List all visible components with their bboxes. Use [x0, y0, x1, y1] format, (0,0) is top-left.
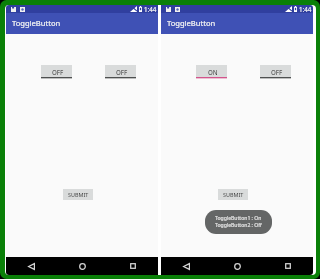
staticText: ToggleButton1 : On — [215, 215, 262, 222]
button[interactable]: Back — [24, 257, 39, 275]
button[interactable]: Home — [230, 257, 245, 275]
staticText: SUBMIT — [223, 191, 244, 198]
staticText: OFF — [52, 68, 64, 76]
button[interactable]: SUBMIT — [63, 189, 93, 200]
button[interactable]: OFF — [105, 65, 136, 79]
button[interactable]: ON — [196, 65, 227, 79]
staticText: SUBMIT — [68, 191, 89, 198]
staticText: ToggleButton — [12, 18, 61, 28]
staticText: 1:44 — [144, 5, 157, 13]
button[interactable]: Back — [179, 257, 194, 275]
staticText: ToggleButton — [167, 18, 216, 28]
staticText: ToggleButton2 : Off — [215, 222, 262, 229]
staticText: 1:44 — [299, 5, 312, 13]
button[interactable]: OFF — [41, 65, 72, 79]
button[interactable]: OFF — [260, 65, 291, 79]
staticText: ON — [208, 68, 218, 76]
staticText: OFF — [116, 68, 128, 76]
button[interactable]: Recents — [125, 257, 140, 275]
button[interactable]: SUBMIT — [218, 189, 248, 200]
staticText: OFF — [271, 68, 283, 76]
button[interactable]: Home — [75, 257, 90, 275]
button[interactable]: Recents — [280, 257, 295, 275]
